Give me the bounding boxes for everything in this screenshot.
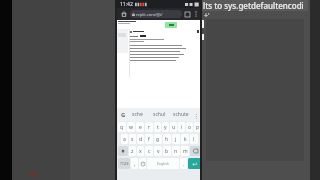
- staticText: .: [183, 160, 185, 168]
- staticText: schute: [173, 111, 189, 118]
- button[interactable]: t: [154, 122, 161, 132]
- button[interactable]: Home: [119, 9, 129, 19]
- button[interactable]: l: [190, 134, 198, 144]
- staticText: lts to sys.getdefaultencodi: [203, 0, 304, 11]
- button[interactable]: z: [129, 146, 136, 156]
- button[interactable]: Expand suggestions: [192, 111, 200, 119]
- button[interactable]: w: [127, 122, 135, 132]
- button[interactable]: n: [172, 146, 180, 156]
- staticText: a: [123, 136, 126, 143]
- button[interactable]: f: [145, 134, 153, 144]
- staticText: v: [157, 148, 160, 155]
- button[interactable]: h: [163, 134, 171, 144]
- staticText: p: [196, 124, 200, 131]
- button[interactable]: e: [136, 122, 144, 132]
- button[interactable]: p: [194, 122, 201, 132]
- staticText: f: [148, 136, 150, 143]
- staticText: x: [139, 148, 142, 155]
- staticText: schul: [153, 111, 166, 118]
- button[interactable]: s: [129, 134, 136, 144]
- button[interactable]: sche: [127, 108, 148, 121]
- staticText: m: [183, 148, 188, 155]
- button[interactable]: b: [163, 146, 171, 156]
- staticText: y: [164, 124, 167, 131]
- button[interactable]: g: [154, 134, 162, 144]
- staticText: English: [157, 161, 169, 166]
- button[interactable]: replit.com/@i/encoding: [130, 10, 182, 18]
- button[interactable]: Google search: [119, 111, 127, 119]
- staticText: 11:42: [120, 1, 133, 8]
- staticText: G: [121, 111, 126, 119]
- button[interactable]: Comma: [131, 158, 138, 169]
- staticText: k: [184, 136, 187, 143]
- button[interactable]: a: [121, 134, 128, 144]
- staticText: replit.com/@i/encoding: [136, 12, 180, 17]
- staticText: z: [131, 148, 134, 155]
- staticText: d: [139, 136, 143, 143]
- button[interactable]: Run: [165, 22, 177, 28]
- staticText: l: [193, 136, 195, 143]
- staticText: o: [188, 124, 192, 131]
- staticText: h: [165, 136, 169, 143]
- staticText: t: [157, 124, 159, 131]
- button[interactable]: q: [118, 122, 126, 132]
- button[interactable]: Period: [180, 158, 187, 169]
- button[interactable]: x: [137, 146, 144, 156]
- staticText: i: [181, 124, 183, 131]
- button[interactable]: m: [181, 146, 189, 156]
- button[interactable]: j: [172, 134, 180, 144]
- button[interactable]: Enter: [188, 158, 201, 169]
- button[interactable]: o: [186, 122, 193, 132]
- button[interactable]: Tabs: [183, 10, 192, 19]
- button[interactable]: More options: [192, 10, 200, 18]
- button[interactable]: v: [154, 146, 162, 156]
- button[interactable]: Backspace: [190, 146, 201, 156]
- staticText: b: [165, 148, 169, 155]
- button[interactable]: y: [162, 122, 169, 132]
- button[interactable]: i: [178, 122, 185, 132]
- button[interactable]: k: [181, 134, 189, 144]
- button[interactable]: Space: [147, 158, 179, 169]
- staticText: ?123: [120, 161, 129, 166]
- staticText: u: [172, 124, 176, 131]
- staticText: sche: [132, 111, 143, 118]
- staticText: n: [174, 148, 178, 155]
- staticText: ,: [134, 160, 136, 168]
- staticText: s: [131, 136, 134, 143]
- button[interactable]: Shift: [118, 146, 128, 156]
- button[interactable]: schute: [170, 108, 192, 121]
- button[interactable]: c: [145, 146, 153, 156]
- staticText: r: [148, 124, 151, 131]
- staticText: +': [204, 11, 210, 21]
- staticText: j: [175, 136, 177, 143]
- button[interactable]: Emoji: [139, 158, 146, 169]
- staticText: g: [156, 136, 160, 143]
- button[interactable]: u: [170, 122, 177, 132]
- button[interactable]: lts to sys.getdefaultencodi: [202, 0, 308, 11]
- staticText: e: [139, 124, 142, 131]
- staticText: ⋮: [193, 112, 199, 119]
- button[interactable]: r: [145, 122, 153, 132]
- button[interactable]: d: [137, 134, 144, 144]
- button[interactable]: ?123: [118, 158, 130, 169]
- button[interactable]: schul: [148, 108, 170, 121]
- staticText: q: [120, 124, 124, 131]
- staticText: w: [129, 124, 133, 131]
- staticText: c: [148, 148, 151, 155]
